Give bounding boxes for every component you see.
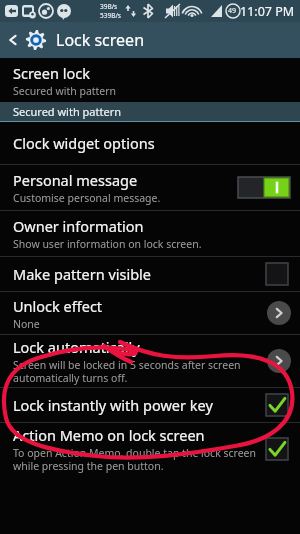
staticText: To open Action Memo, double tap the lock… — [13, 446, 260, 473]
button[interactable]: Personal message toggle, on — [238, 177, 290, 198]
staticText: 39B/s — [100, 2, 118, 11]
staticText: 11:07 PM — [240, 3, 295, 20]
button[interactable]: More options — [267, 301, 291, 325]
staticText: Lock screen — [56, 29, 145, 51]
button[interactable]: Checked — [266, 394, 288, 416]
button[interactable]: Navigate up, Lock screen — [0, 22, 300, 58]
button[interactable]: Lock instantly with power key — [0, 388, 300, 422]
staticText: Make pattern visible — [13, 264, 152, 284]
staticText: Personal message — [13, 170, 138, 190]
staticText: Screen lock — [13, 63, 90, 83]
staticText: Secured with pattern — [13, 104, 122, 119]
staticText: Action Memo on lock screen — [13, 425, 205, 445]
staticText: Unlock effect — [13, 296, 103, 316]
button[interactable]: Screen lock — [0, 58, 300, 102]
button[interactable]: More options — [267, 349, 291, 373]
staticText: Screen will be locked in 5 seconds after… — [13, 358, 261, 385]
button[interactable]: Clock widget options — [0, 122, 300, 164]
staticText: Secured with pattern — [13, 84, 117, 98]
button[interactable]: Action Memo on lock screen — [0, 423, 300, 475]
staticText: Customise personal message. — [13, 191, 161, 205]
staticText: Lock automatically — [13, 337, 140, 357]
staticText: Owner information — [13, 216, 144, 236]
staticText: Show user information on lock screen. — [13, 237, 202, 251]
staticText: 539B/s — [100, 11, 121, 20]
button[interactable]: Lock automatically — [0, 335, 300, 387]
staticText: Lock instantly with power key — [13, 395, 213, 415]
staticText: Clock widget options — [13, 133, 155, 153]
button[interactable]: Personal message — [0, 165, 300, 210]
button[interactable]: Make pattern visible — [0, 257, 300, 291]
button[interactable]: Owner information — [0, 211, 300, 256]
staticText: 49 — [228, 6, 237, 16]
button[interactable]: Unchecked — [266, 263, 288, 285]
button[interactable]: Unlock effect — [0, 292, 300, 334]
button[interactable]: Checked — [266, 438, 288, 460]
staticText: None — [13, 317, 40, 331]
